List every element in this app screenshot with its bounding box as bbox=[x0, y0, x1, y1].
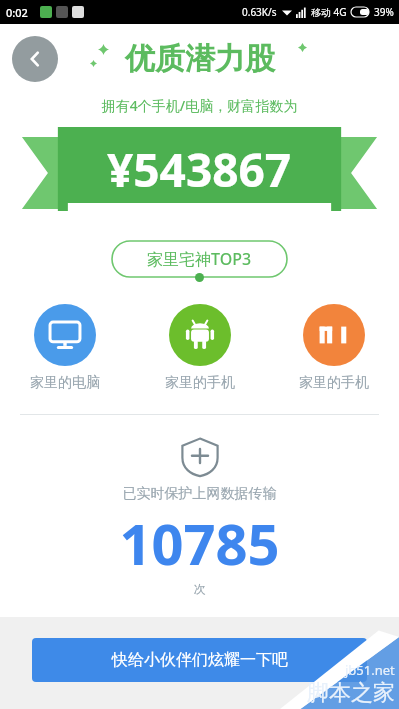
staticText: jb51.net bbox=[345, 661, 395, 679]
staticText: 家里的手机 bbox=[299, 374, 369, 392]
staticText: 次 bbox=[0, 581, 399, 596]
button[interactable]: 家里的手机 bbox=[299, 304, 369, 392]
staticText: 快给小伙伴们炫耀一下吧 bbox=[112, 650, 288, 670]
staticText: 家里宅神TOP3 bbox=[147, 248, 252, 270]
staticText: 0.63K/s bbox=[242, 5, 277, 19]
staticText: 0:02 bbox=[6, 5, 28, 20]
button[interactable]: Back bbox=[12, 36, 58, 82]
staticText: 拥有4个手机/电脑，财富指数为 bbox=[0, 96, 399, 115]
staticText: ¥543867 bbox=[107, 138, 292, 201]
staticText: 已实时保护上网数据传输 bbox=[0, 485, 399, 503]
button[interactable]: 快给小伙伴们炫耀一下吧 bbox=[32, 638, 367, 682]
staticText: 家里的电脑 bbox=[30, 374, 100, 392]
staticText: 39% bbox=[374, 5, 394, 19]
button[interactable]: 家里的电脑 bbox=[30, 304, 100, 392]
button[interactable]: 家里的手机 bbox=[165, 304, 235, 392]
staticText: 家里的手机 bbox=[165, 374, 235, 392]
staticText: 脚本之家 bbox=[307, 679, 395, 707]
staticText: 优质潜力股 bbox=[125, 40, 275, 78]
staticText: 10785 bbox=[0, 505, 399, 581]
staticText: 移动 4G bbox=[311, 5, 347, 19]
